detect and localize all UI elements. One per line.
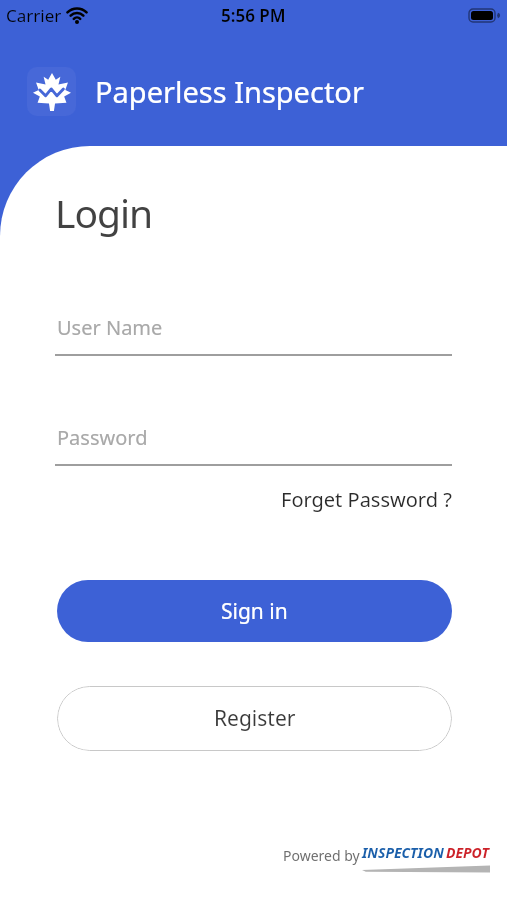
staticText: Password bbox=[57, 424, 148, 451]
staticText: Carrier bbox=[6, 4, 62, 27]
staticText: Powered by bbox=[283, 846, 360, 865]
staticText: Login bbox=[55, 186, 153, 239]
button[interactable]: Sign in bbox=[57, 580, 452, 642]
staticText: Sign in bbox=[221, 597, 288, 626]
button[interactable]: Register bbox=[57, 686, 452, 751]
button[interactable]: Forget Password ? bbox=[281, 486, 452, 513]
staticText: 5:56 PM bbox=[221, 4, 286, 27]
button[interactable]: INSPECTION bbox=[362, 843, 490, 875]
staticText: User Name bbox=[57, 314, 163, 341]
button[interactable] bbox=[55, 415, 452, 466]
staticText: DEPOT bbox=[446, 843, 489, 862]
button[interactable] bbox=[55, 305, 452, 356]
staticText: Paperless Inspector bbox=[95, 72, 364, 111]
staticText: INSPECTION bbox=[362, 843, 444, 862]
staticText: Forget Password ? bbox=[281, 486, 452, 513]
staticText: Register bbox=[214, 704, 296, 733]
